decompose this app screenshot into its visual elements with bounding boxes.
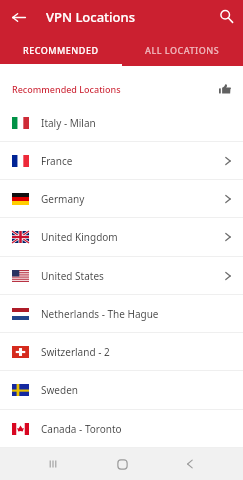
- button[interactable]: France: [0, 142, 243, 180]
- button[interactable]: Search: [211, 1, 241, 31]
- button[interactable]: Home: [107, 449, 137, 479]
- button[interactable]: Switzerland - 2: [0, 333, 243, 371]
- button[interactable]: United Kingdom: [0, 218, 243, 257]
- button[interactable]: RECOMMENDED: [0, 38, 121, 66]
- staticText: France: [41, 154, 73, 168]
- button[interactable]: Netherlands - The Hague: [0, 295, 243, 333]
- button[interactable]: Recent apps: [38, 449, 68, 479]
- staticText: VPN Locations: [46, 8, 135, 26]
- staticText: United Kingdom: [41, 230, 118, 244]
- staticText: RECOMMENDED: [23, 44, 99, 56]
- staticText: Netherlands - The Hague: [41, 307, 159, 321]
- button[interactable]: United States: [0, 257, 243, 295]
- button[interactable]: Back: [4, 2, 34, 32]
- staticText: Italy - Milan: [41, 116, 96, 130]
- staticText: Germany: [41, 192, 85, 206]
- button[interactable]: ALL LOCATIONS: [121, 38, 243, 66]
- button[interactable]: Germany: [0, 180, 243, 218]
- staticText: Recommended Locations: [12, 83, 121, 95]
- button[interactable]: Canada - Toronto: [0, 410, 243, 448]
- staticText: Canada - Toronto: [41, 422, 122, 436]
- button[interactable]: Back: [175, 449, 205, 479]
- button[interactable]: Recommended: [217, 81, 233, 97]
- staticText: Switzerland - 2: [41, 345, 110, 359]
- staticText: Sweden: [41, 383, 78, 397]
- button[interactable]: Sweden: [0, 371, 243, 410]
- staticText: ALL LOCATIONS: [145, 44, 220, 56]
- staticText: United States: [41, 269, 104, 283]
- button[interactable]: Italy - Milan: [0, 104, 243, 142]
